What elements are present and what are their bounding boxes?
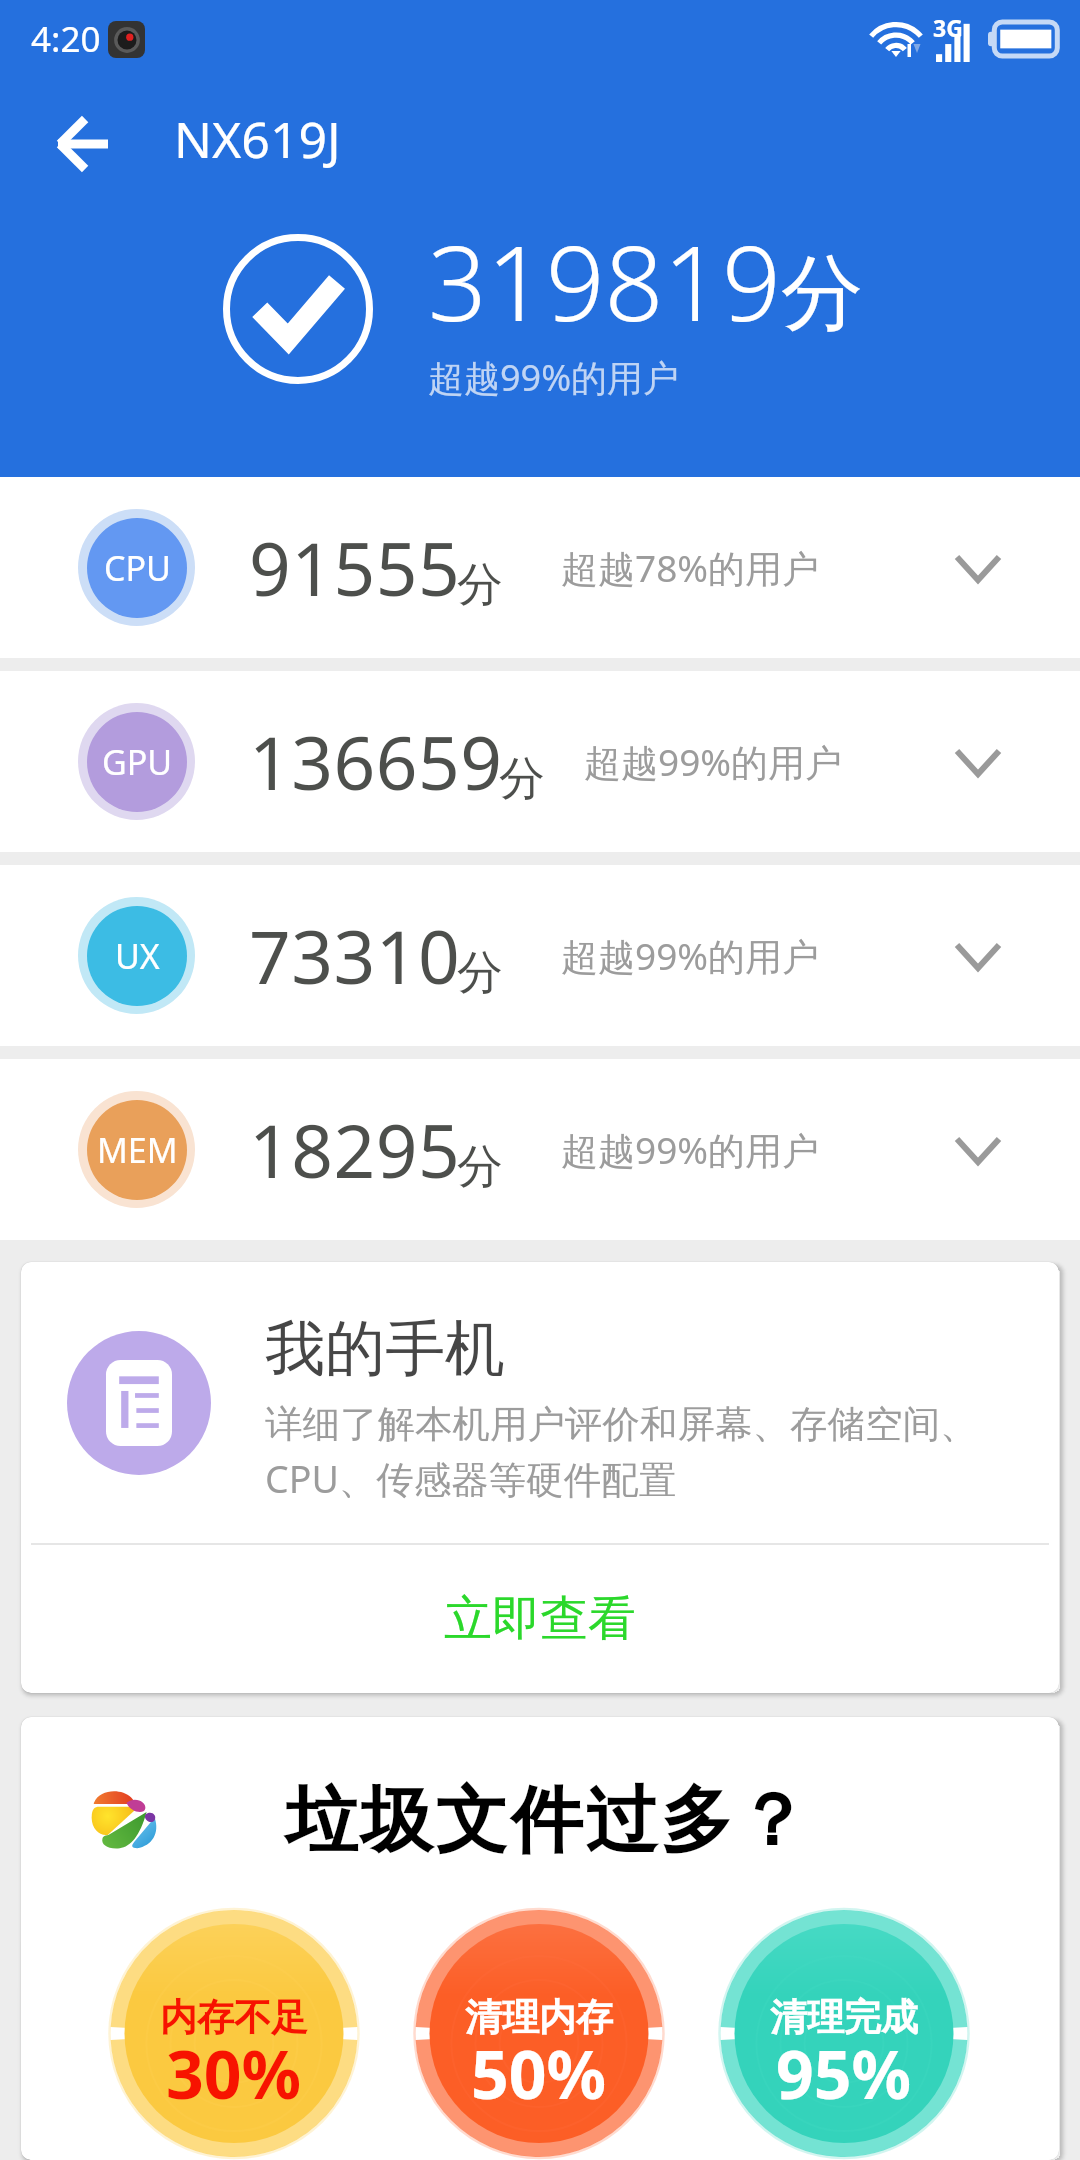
staticText: 垃圾文件过多？	[284, 1776, 809, 1867]
button[interactable]: 垃圾文件过多？	[21, 1717, 1059, 2160]
staticText: 超越99%的用户	[561, 1124, 820, 1175]
button[interactable]: CPU	[0, 477, 1080, 658]
staticText: 清理完成	[770, 1994, 918, 2041]
staticText: NX619J	[174, 105, 341, 173]
staticText: 50%	[471, 2028, 607, 2118]
staticText: 95%	[776, 2028, 912, 2118]
staticText: CPU	[104, 545, 171, 591]
staticText: 我的手机	[265, 1311, 505, 1387]
button[interactable]: Expand	[933, 523, 1023, 613]
staticText: 分	[457, 1138, 503, 1196]
staticText: 91555	[249, 518, 461, 617]
staticText: 136659	[249, 712, 503, 811]
staticText: UX	[115, 933, 160, 979]
staticText: 分	[781, 242, 863, 345]
button[interactable]: 立即查看	[21, 1545, 1059, 1693]
button[interactable]: Expand	[933, 911, 1023, 1001]
staticText: 18295	[249, 1100, 461, 1199]
staticText: 分	[457, 556, 503, 614]
staticText: 73310	[249, 906, 461, 1005]
staticText: 30%	[166, 2028, 302, 2118]
button[interactable]: Back	[0, 85, 1080, 203]
staticText: 超越99%的用户	[584, 736, 843, 787]
button[interactable]: 我的手机	[21, 1262, 1059, 1543]
staticText: 分	[457, 944, 503, 1002]
staticText: 内存不足	[160, 1994, 308, 2041]
staticText: 清理内存	[465, 1994, 613, 2041]
staticText: 立即查看	[444, 1589, 636, 1649]
button[interactable]: GPU	[0, 671, 1080, 852]
staticText: 3G	[933, 12, 963, 43]
button[interactable]: UX	[0, 865, 1080, 1046]
button[interactable]: Expand	[933, 717, 1023, 807]
staticText: 4:20	[31, 15, 101, 63]
staticText: MEM	[97, 1127, 178, 1173]
staticText: 319819	[428, 211, 781, 351]
button[interactable]: MEM	[0, 1059, 1080, 1240]
staticText: 超越99%的用户	[561, 930, 820, 981]
staticText: GPU	[102, 739, 173, 785]
staticText: 超越78%的用户	[561, 542, 820, 593]
staticText: 超越99%的用户	[428, 353, 680, 402]
staticText: 分	[499, 750, 545, 808]
button[interactable]: Expand	[933, 1105, 1023, 1195]
staticText: 详细了解本机用户评价和屏幕、存储空间、 CPU、传感器等硬件配置	[265, 1401, 978, 1504]
